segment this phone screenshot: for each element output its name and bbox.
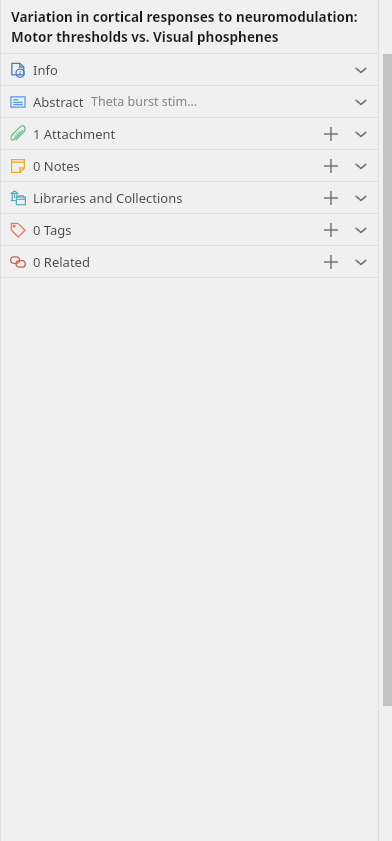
button[interactable]: Add 0 Notes (316, 151, 346, 181)
button[interactable]: 1 Attachment (0, 118, 392, 149)
button[interactable]: Expand 0 Related (346, 247, 376, 277)
staticText: Abstract (33, 93, 84, 111)
staticText: 1 Attachment (33, 125, 116, 143)
button[interactable]: Add Libraries and Collections (316, 183, 346, 213)
button[interactable]: 0 Tags (0, 214, 392, 245)
button[interactable]: Info (0, 54, 392, 85)
staticText: 0 Tags (33, 221, 72, 239)
button[interactable]: Add 0 Related (316, 247, 346, 277)
staticText: Info (33, 61, 58, 79)
staticText: 0 Notes (33, 157, 80, 175)
button[interactable]: Expand 1 Attachment (346, 119, 376, 149)
button[interactable]: Variation in cortical responses to neuro… (0, 0, 392, 53)
button[interactable]: Add 1 Attachment (316, 119, 346, 149)
button[interactable]: 0 Related (0, 246, 392, 277)
button[interactable]: Add 0 Tags (316, 215, 346, 245)
button[interactable]: Expand Libraries and Collections (346, 183, 376, 213)
staticText: Libraries and Collections (33, 189, 183, 207)
button[interactable]: Expand Info (346, 55, 376, 85)
button[interactable]: 0 Notes (0, 150, 392, 181)
button[interactable]: Libraries and Collections (0, 182, 392, 213)
staticText: 0 Related (33, 253, 90, 271)
button[interactable]: Expand 0 Notes (346, 151, 376, 181)
button[interactable]: Expand 0 Tags (346, 215, 376, 245)
button[interactable]: Expand Abstract (346, 87, 376, 117)
staticText: Theta burst stimulation (TBS) is a repet… (91, 93, 203, 110)
staticText: Variation in cortical responses to neuro… (11, 8, 376, 46)
button[interactable]: Abstract (0, 86, 392, 117)
